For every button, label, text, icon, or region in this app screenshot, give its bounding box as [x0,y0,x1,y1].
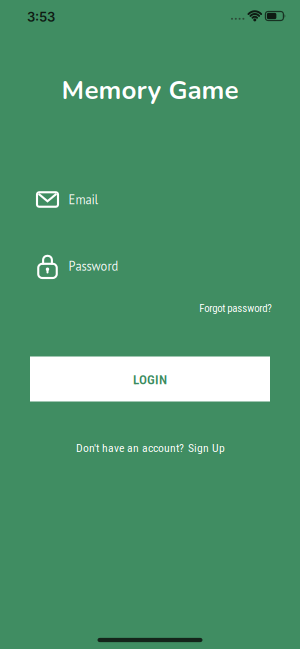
staticText: LOGIN [133,372,167,387]
button[interactable]: LOGIN [30,356,270,401]
button[interactable]: Password [37,250,270,282]
staticText: Password [68,258,118,274]
staticText: 3:53 [27,9,55,25]
button[interactable]: Forgot password? [199,302,272,315]
staticText: Memory Game [61,73,238,108]
staticText: Don't have an account? [76,441,184,455]
staticText: Email [68,191,98,208]
staticText: Sign Up [188,441,225,455]
staticText: Forgot password? [199,302,272,315]
button[interactable]: Email [37,183,270,215]
button[interactable]: Sign Up [188,441,225,455]
